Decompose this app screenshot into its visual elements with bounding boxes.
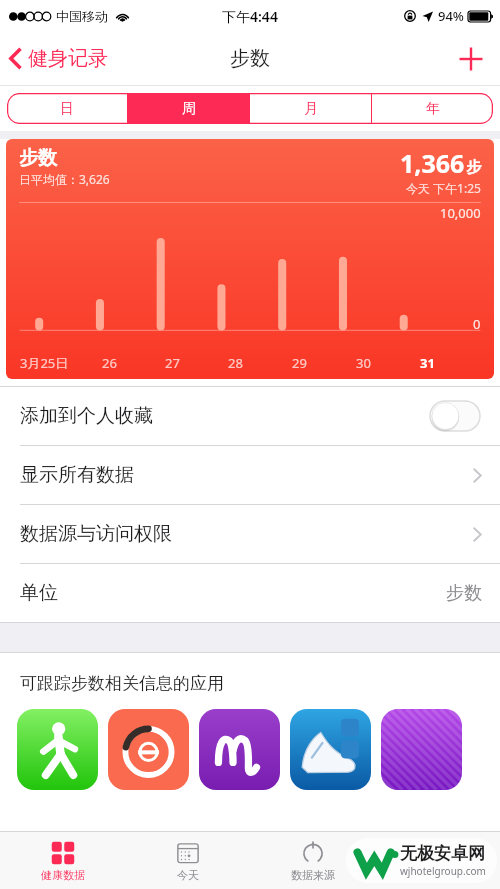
staticText: 添加到个人收藏 bbox=[20, 404, 153, 428]
staticText: 周 bbox=[182, 100, 196, 118]
staticText: 31 bbox=[420, 354, 435, 372]
staticText: 无极安卓网 bbox=[400, 843, 485, 864]
staticText: 年 bbox=[426, 100, 440, 118]
button[interactable]: 日 bbox=[7, 93, 127, 124]
button[interactable]: 健身记录 bbox=[0, 38, 120, 79]
staticText: 可跟踪步数相关信息的应用 bbox=[20, 673, 224, 694]
staticText: 今天 下午1:25 bbox=[406, 180, 481, 196]
staticText: 中国移动 bbox=[56, 8, 108, 24]
button[interactable]: 显示所有数据 bbox=[0, 446, 500, 504]
staticText: wjhotelgroup.com bbox=[400, 864, 486, 878]
staticText: 数据来源 bbox=[291, 868, 335, 882]
button[interactable]: 医疗急救卡 bbox=[375, 832, 500, 889]
staticText: 健身记录 bbox=[28, 46, 108, 71]
staticText: 日平均值：3,626 bbox=[19, 171, 110, 187]
staticText: 今天 bbox=[177, 868, 199, 882]
button[interactable]: 单位 bbox=[0, 564, 500, 622]
button[interactable]: Add data bbox=[442, 35, 500, 83]
button[interactable]: 步数 bbox=[6, 139, 494, 379]
button[interactable]: 数据源与访问权限 bbox=[0, 505, 500, 563]
button[interactable]: Runtastic bbox=[290, 709, 371, 790]
staticText: 单位 bbox=[20, 581, 58, 605]
button[interactable]: 月 bbox=[250, 93, 371, 124]
staticText: 健康数据 bbox=[41, 868, 85, 882]
staticText: 步数 bbox=[230, 46, 270, 71]
staticText: 27 bbox=[165, 354, 180, 372]
staticText: 28 bbox=[228, 354, 243, 372]
staticText: 步 bbox=[466, 158, 481, 177]
button[interactable]: 周 bbox=[128, 93, 249, 124]
staticText: 数据源与访问权限 bbox=[20, 522, 172, 546]
staticText: 94% bbox=[438, 7, 464, 25]
staticText: 步数 bbox=[19, 146, 57, 170]
button[interactable]: 添加到个人收藏 bbox=[0, 387, 500, 445]
button[interactable]: Pedometer bbox=[17, 709, 98, 790]
button[interactable]: Stepz bbox=[108, 709, 189, 790]
staticText: 医疗急救卡 bbox=[410, 868, 465, 882]
button[interactable]: 年 bbox=[372, 93, 493, 124]
button[interactable]: 今天 bbox=[125, 832, 250, 889]
staticText: 月 bbox=[304, 100, 318, 118]
button[interactable]: Moves bbox=[199, 709, 280, 790]
button[interactable]: 健康数据 bbox=[0, 832, 125, 889]
staticText: 0 bbox=[473, 315, 481, 333]
staticText: 下午4:44 bbox=[222, 7, 278, 26]
button[interactable]: 数据来源 bbox=[250, 832, 375, 889]
staticText: 29 bbox=[292, 354, 307, 372]
staticText: 26 bbox=[102, 354, 117, 372]
staticText: 3月25日 bbox=[20, 354, 69, 372]
staticText: 1,366 bbox=[400, 146, 465, 180]
staticText: 日 bbox=[60, 100, 74, 118]
staticText: 10,000 bbox=[440, 204, 481, 222]
staticText: 步数 bbox=[446, 582, 482, 605]
button[interactable]: UP bbox=[381, 709, 462, 790]
staticText: 30 bbox=[356, 354, 371, 372]
staticText: 显示所有数据 bbox=[20, 463, 134, 487]
